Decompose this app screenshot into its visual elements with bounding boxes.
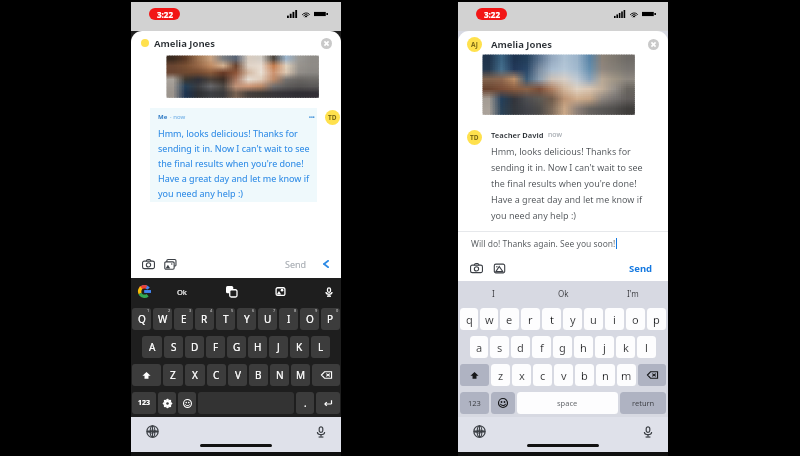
button[interactable]: b	[575, 364, 594, 386]
button[interactable]: a	[470, 336, 488, 358]
button[interactable]: e	[500, 308, 519, 330]
button[interactable]: L	[311, 336, 330, 358]
button[interactable]: Amelia Jones	[131, 35, 341, 51]
button[interactable]: return	[620, 392, 666, 414]
staticText: K	[296, 340, 303, 354]
button[interactable]: Me	[150, 108, 317, 202]
button[interactable]: Send	[282, 258, 310, 270]
button[interactable]: Y	[237, 308, 256, 330]
button[interactable]: Backspace	[638, 364, 666, 386]
button[interactable]: Backspace	[312, 364, 340, 386]
button[interactable]: 123	[132, 392, 156, 414]
staticText: 5	[231, 308, 234, 313]
button[interactable]: Camera	[470, 262, 483, 275]
button[interactable]: t	[542, 308, 561, 330]
staticText: e	[506, 312, 513, 327]
button[interactable]: G	[227, 336, 246, 358]
button[interactable]: c	[533, 364, 552, 386]
button[interactable]: Enter	[316, 392, 340, 414]
button[interactable]: Voice	[642, 426, 654, 438]
staticText: s	[497, 340, 503, 355]
button[interactable]: U	[258, 308, 277, 330]
button[interactable]: y	[563, 308, 582, 330]
button[interactable]: Close	[648, 39, 659, 50]
button[interactable]: o	[626, 308, 645, 330]
button[interactable]: f	[532, 336, 551, 358]
button[interactable]: D	[185, 336, 204, 358]
button[interactable]: X	[185, 364, 205, 386]
button[interactable]: AJ	[458, 34, 668, 55]
button[interactable]: s	[490, 336, 509, 358]
staticText: I	[492, 288, 495, 299]
button[interactable]: Collapse	[321, 259, 331, 269]
button[interactable]: d	[511, 336, 530, 358]
button[interactable]: P	[321, 308, 340, 330]
button[interactable]: K	[290, 336, 309, 358]
button[interactable]: 123	[460, 392, 489, 414]
button[interactable]: W	[153, 308, 172, 330]
button[interactable]: Photos	[493, 262, 506, 275]
button[interactable]: Close	[321, 38, 332, 49]
button[interactable]: Z	[163, 364, 183, 386]
button[interactable]: F	[206, 336, 225, 358]
button[interactable]: I	[279, 308, 298, 330]
button[interactable]: A	[142, 336, 162, 358]
button[interactable]: C	[207, 364, 226, 386]
button[interactable]: j	[595, 336, 614, 358]
button[interactable]: .	[296, 392, 314, 414]
button[interactable]: Language	[473, 425, 486, 438]
staticText: J	[277, 340, 280, 354]
button[interactable]: Voice	[315, 426, 327, 438]
button[interactable]: V	[228, 364, 247, 386]
button[interactable]: O	[300, 308, 319, 330]
button[interactable]: J	[269, 336, 288, 358]
button[interactable]: Q	[132, 308, 151, 330]
button[interactable]: v	[554, 364, 573, 386]
button[interactable]: Google	[138, 285, 151, 298]
staticText: d	[517, 340, 524, 355]
button[interactable]: Stickers	[275, 286, 286, 297]
staticText: w	[485, 312, 494, 327]
button[interactable]: l	[637, 336, 656, 358]
button[interactable]: R	[195, 308, 214, 330]
button[interactable]: Voice input	[324, 287, 334, 297]
staticText: I	[287, 312, 291, 326]
button[interactable]: S	[164, 336, 183, 358]
button[interactable]: x	[512, 364, 531, 386]
button[interactable]: h	[574, 336, 593, 358]
button[interactable]: H	[248, 336, 267, 358]
staticText: x	[519, 368, 525, 383]
button[interactable]: n	[596, 364, 615, 386]
staticText: C	[213, 368, 220, 382]
button[interactable]: r	[521, 308, 540, 330]
button[interactable]: p	[647, 308, 666, 330]
button[interactable]: Emoji	[178, 392, 196, 414]
button[interactable]: N	[270, 364, 289, 386]
button[interactable]: Camera	[142, 258, 155, 271]
button[interactable]: B	[249, 364, 268, 386]
button[interactable]: Translate	[226, 286, 237, 297]
button[interactable]: Language	[146, 425, 159, 438]
button[interactable]: Photos	[164, 258, 177, 271]
button[interactable]: Send	[627, 262, 655, 275]
button[interactable]: g	[553, 336, 572, 358]
button[interactable]: w	[480, 308, 498, 330]
button[interactable]: i	[605, 308, 624, 330]
staticText: 0	[336, 308, 339, 313]
button[interactable]: m	[617, 364, 636, 386]
button[interactable]: q	[460, 308, 478, 330]
button[interactable]: u	[584, 308, 603, 330]
button[interactable]: space	[517, 392, 618, 414]
button[interactable]: z	[491, 364, 510, 386]
button[interactable]: M	[291, 364, 310, 386]
button[interactable]: Emoji	[491, 392, 515, 414]
button[interactable]: T	[216, 308, 235, 330]
staticText: Hmm, looks delicious! Thanks for	[491, 145, 631, 157]
staticText: 3:22	[484, 9, 500, 20]
button[interactable]: Shift	[460, 364, 489, 386]
button[interactable]: Shift	[132, 364, 161, 386]
button[interactable]: E	[174, 308, 193, 330]
button[interactable]: Settings	[158, 392, 176, 414]
button[interactable]: k	[616, 336, 635, 358]
